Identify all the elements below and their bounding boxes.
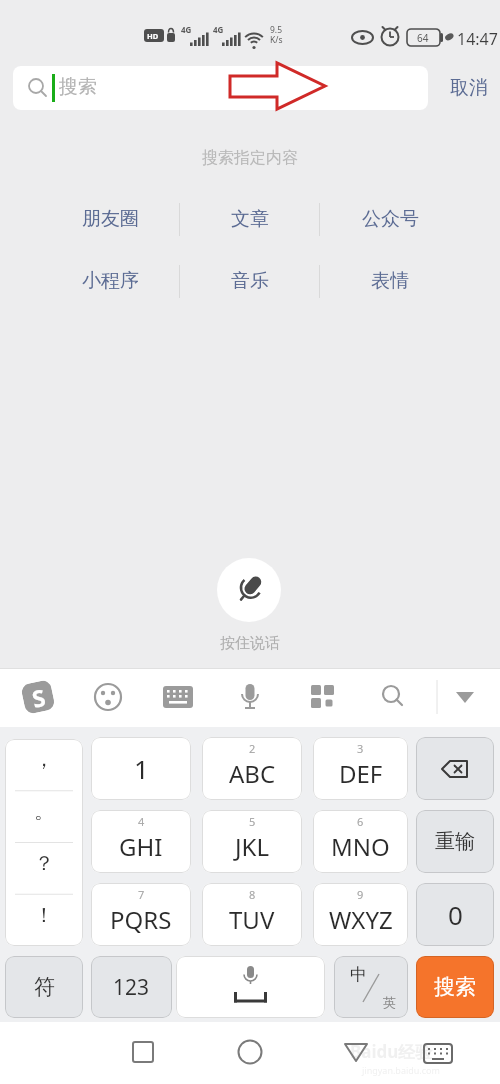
button[interactable]: ， xyxy=(5,739,83,946)
staticText: DEF xyxy=(339,757,383,790)
staticText: GHI xyxy=(119,830,163,863)
button[interactable] xyxy=(230,1032,272,1074)
button[interactable]: 小程序 xyxy=(50,260,170,302)
staticText: 2 xyxy=(249,741,256,756)
button[interactable]: 重输 xyxy=(416,810,494,873)
button[interactable]: 2 xyxy=(202,737,302,800)
button[interactable]: 公众号 xyxy=(330,198,450,240)
staticText: 123 xyxy=(113,973,150,1002)
staticText: 4G xyxy=(181,24,192,35)
button[interactable] xyxy=(235,682,265,712)
staticText: 搜索指定内容 xyxy=(0,148,500,168)
button[interactable] xyxy=(416,737,494,800)
staticText: 重输 xyxy=(435,829,475,854)
staticText: 取消 xyxy=(450,76,488,100)
staticText: MNO xyxy=(331,830,390,863)
button[interactable]: 123 xyxy=(91,956,172,1018)
button[interactable]: 8 xyxy=(202,883,302,946)
staticText: HD xyxy=(147,31,159,41)
button[interactable]: 文章 xyxy=(190,198,310,240)
button[interactable] xyxy=(176,956,325,1018)
button[interactable] xyxy=(448,682,478,712)
staticText: 小程序 xyxy=(82,269,139,293)
staticText: WXYZ xyxy=(329,903,393,936)
staticText: 朋友圈 xyxy=(82,207,139,231)
staticText: 0 xyxy=(448,897,463,932)
button[interactable]: 6 xyxy=(313,810,408,873)
button[interactable]: 1 xyxy=(91,737,191,800)
button[interactable]: 0 xyxy=(416,883,494,946)
button[interactable]: 中 xyxy=(334,956,408,1018)
button[interactable]: 音乐 xyxy=(190,260,310,302)
staticText: 14:47 xyxy=(457,28,498,50)
staticText: 表情 xyxy=(371,269,409,293)
staticText: 文章 xyxy=(231,207,269,231)
staticText: Baidu经验 xyxy=(350,1040,433,1063)
staticText: 英 xyxy=(383,994,396,1010)
staticText: ， xyxy=(34,747,54,772)
staticText: ？ xyxy=(34,851,54,876)
button[interactable] xyxy=(336,1032,378,1074)
staticText: JKL xyxy=(235,830,269,863)
button[interactable]: 搜索 xyxy=(416,956,494,1018)
staticText: PQRS xyxy=(110,903,172,936)
staticText: 符 xyxy=(34,974,55,1000)
button[interactable] xyxy=(307,682,337,712)
button[interactable]: 表情 xyxy=(330,260,450,302)
button[interactable]: 3 xyxy=(313,737,408,800)
staticText: 9 xyxy=(357,887,364,902)
staticText: 1 xyxy=(134,751,149,786)
button[interactable]: 7 xyxy=(91,883,191,946)
button[interactable]: 5 xyxy=(202,810,302,873)
button[interactable] xyxy=(217,558,281,622)
staticText: 4G xyxy=(213,24,224,35)
staticText: 9.5 K/s xyxy=(270,24,283,46)
staticText: 64 xyxy=(417,31,429,45)
button[interactable]: 朋友圈 xyxy=(50,198,170,240)
staticText: 按住说话 xyxy=(0,634,500,653)
staticText: 。 xyxy=(34,799,54,824)
button[interactable] xyxy=(414,1032,456,1074)
staticText: 音乐 xyxy=(231,269,269,293)
staticText: 3 xyxy=(357,741,364,756)
staticText: 6 xyxy=(357,814,364,829)
button[interactable] xyxy=(123,1032,165,1074)
staticText: 7 xyxy=(138,887,145,902)
button[interactable]: 取消 xyxy=(440,66,498,110)
button[interactable]: 4 xyxy=(91,810,191,873)
staticText: 5 xyxy=(249,814,256,829)
button[interactable]: 9 xyxy=(313,883,408,946)
staticText: 公众号 xyxy=(362,207,419,231)
staticText: 搜索 xyxy=(434,974,476,1000)
staticText: 8 xyxy=(249,887,256,902)
button[interactable] xyxy=(163,682,193,712)
staticText: 中 xyxy=(350,964,367,985)
button[interactable] xyxy=(93,682,123,712)
staticText: ABC xyxy=(229,757,276,790)
staticText: 搜索 xyxy=(59,75,97,99)
button[interactable]: 搜索 xyxy=(13,66,428,110)
staticText: jingyan.baidu.com xyxy=(362,1064,440,1076)
button[interactable]: 符 xyxy=(5,956,83,1018)
staticText: ！ xyxy=(34,903,54,928)
staticText: S xyxy=(29,681,48,713)
button[interactable] xyxy=(376,682,406,712)
staticText: 4 xyxy=(138,814,145,829)
staticText: TUV xyxy=(229,903,275,936)
button[interactable]: S xyxy=(20,679,56,715)
